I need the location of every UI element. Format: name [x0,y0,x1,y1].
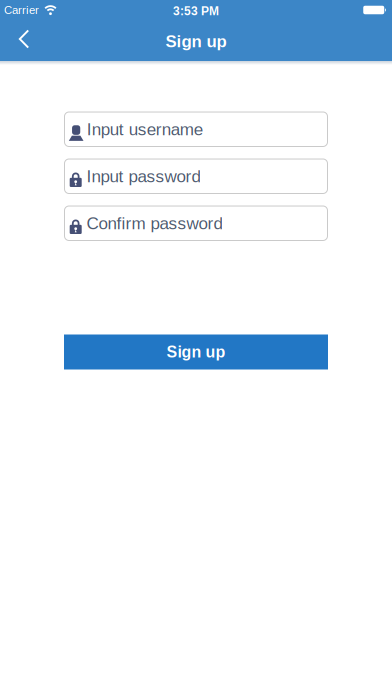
staticText: 3:53 PM [173,4,219,18]
button[interactable]: Confirm password [64,205,328,241]
button[interactable]: Input username [64,111,328,147]
staticText: Sign up [165,32,226,51]
button[interactable]: Sign up [64,334,328,369]
staticText: Carrier [4,4,39,16]
button[interactable] [0,31,49,50]
staticText: Confirm password [86,214,222,233]
staticText: Input password [86,167,200,186]
staticText: Input username [87,120,203,139]
button[interactable]: Input password [64,158,328,194]
staticText: Sign up [166,343,225,361]
